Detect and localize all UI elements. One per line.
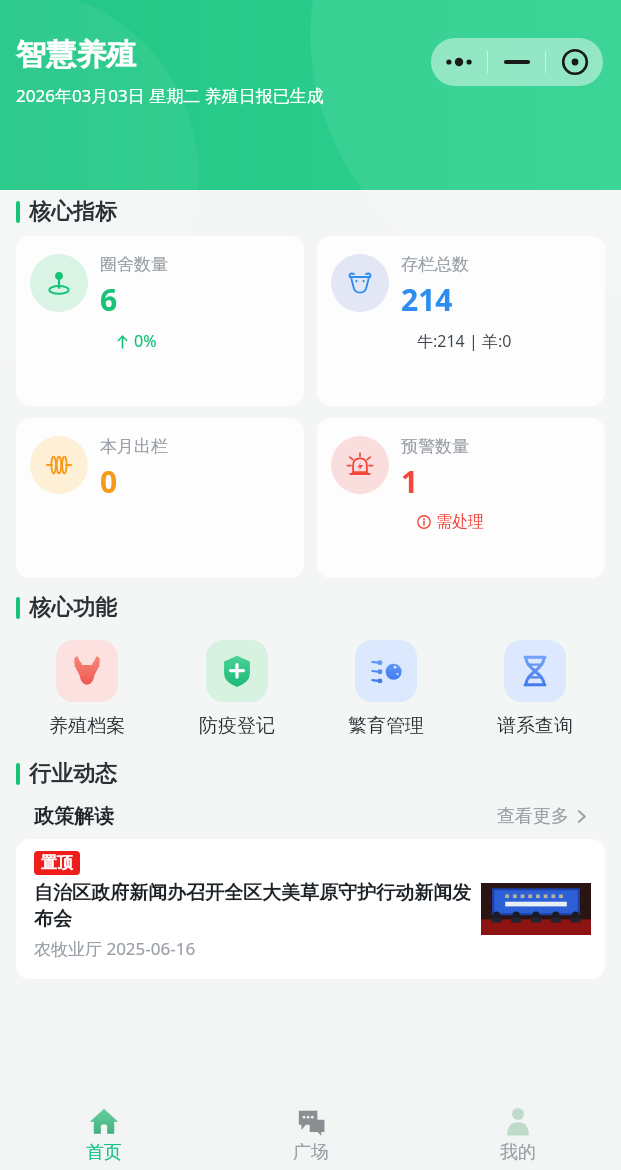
staticText: 0%: [134, 330, 157, 352]
staticText: 核心指标: [29, 198, 117, 226]
button[interactable]: 关闭: [546, 38, 603, 86]
button[interactable]: 最小化: [488, 38, 545, 86]
staticText: 自治区政府新闻办召开全区大美草原守护行动新闻发布会: [34, 881, 473, 931]
staticText: 需处理: [436, 512, 484, 532]
staticText: 谱系查询: [497, 714, 573, 738]
button[interactable]: 谱系查询: [460, 640, 609, 738]
staticText: 养殖档案: [49, 714, 125, 738]
staticText: 6: [100, 279, 118, 320]
button[interactable]: 首页: [0, 1098, 207, 1170]
staticText: 牛:214 | 羊:0: [417, 330, 512, 352]
button[interactable]: 存栏总数: [317, 236, 605, 406]
staticText: 繁育管理: [348, 714, 424, 738]
staticText: 智慧养殖: [16, 36, 136, 74]
button[interactable]: 我的: [414, 1098, 621, 1170]
button[interactable]: 置顶: [16, 839, 605, 979]
button[interactable]: 繁育管理: [311, 640, 460, 738]
staticText: 存栏总数: [401, 254, 469, 275]
staticText: 0: [100, 461, 118, 502]
button[interactable]: 本月出栏: [16, 418, 304, 578]
staticText: 预警数量: [401, 436, 469, 457]
staticText: 防疫登记: [199, 714, 275, 738]
button[interactable]: 广场: [207, 1098, 414, 1170]
staticText: 置顶: [41, 853, 73, 873]
button[interactable]: 查看更多: [497, 805, 587, 828]
staticText: 政策解读: [34, 804, 114, 829]
button[interactable]: 养殖档案: [12, 640, 162, 738]
staticText: 首页: [86, 1141, 122, 1164]
button[interactable]: 防疫登记: [162, 640, 311, 738]
staticText: 行业动态: [29, 760, 117, 788]
staticText: 1: [401, 461, 419, 502]
staticText: 214: [401, 279, 453, 320]
staticText: 2026年03月03日 星期二 养殖日报已生成: [16, 84, 324, 107]
staticText: 本月出栏: [100, 436, 168, 457]
button[interactable]: 圈舍数量: [16, 236, 304, 406]
staticText: 圈舍数量: [100, 254, 168, 275]
button[interactable]: 更多: [431, 38, 487, 86]
staticText: 核心功能: [29, 594, 117, 622]
staticText: 我的: [500, 1141, 536, 1164]
staticText: 广场: [293, 1141, 329, 1164]
staticText: 查看更多: [497, 805, 569, 828]
button[interactable]: 预警数量: [317, 418, 605, 578]
staticText: 农牧业厅 2025-06-16: [34, 937, 196, 960]
